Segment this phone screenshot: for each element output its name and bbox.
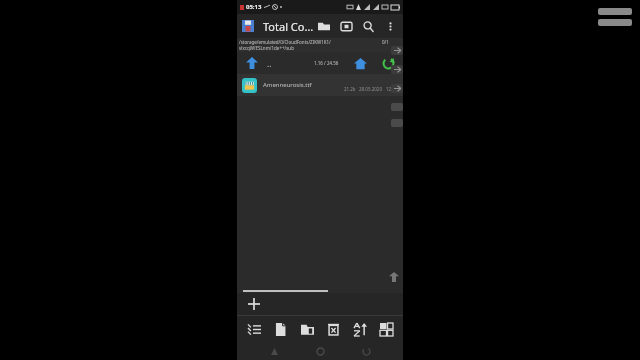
- button[interactable]: Home: [351, 54, 369, 72]
- staticText: 05:13: [246, 3, 262, 11]
- button[interactable]: App icon: [241, 19, 255, 33]
- button[interactable]: Sort: [349, 318, 371, 340]
- button[interactable]: More options: [381, 17, 399, 35]
- button[interactable]: Up one level: [243, 54, 261, 72]
- staticText: vlxcqW/ESLnm/1de++/sub: [239, 45, 294, 51]
- staticText: Amenneurosis.ttf: [263, 81, 312, 89]
- staticText: Total Com...: [263, 19, 315, 34]
- button[interactable]: Select: [243, 318, 265, 340]
- button[interactable]: Tab 2: [391, 119, 403, 127]
- button[interactable]: Recents: [357, 342, 375, 360]
- staticText: 0/1: [382, 39, 389, 45]
- button[interactable]: /storage/emulated/0/CloudFonts/ZIKW1K1/: [237, 38, 403, 52]
- button[interactable]: Home: [311, 342, 329, 360]
- staticText: 21.2k: [344, 86, 356, 92]
- button[interactable]: Back: [265, 342, 283, 360]
- button[interactable]: Tab 1: [391, 103, 403, 111]
- staticText: ..: [267, 58, 272, 69]
- staticText: 12:34: [386, 86, 398, 92]
- button[interactable]: New folder: [296, 318, 318, 340]
- button[interactable]: Panel button 3: [391, 84, 403, 93]
- button[interactable]: Search: [359, 17, 377, 35]
- staticText: 28.05.2020: [359, 86, 383, 92]
- button[interactable]: Refresh: [379, 54, 397, 72]
- button[interactable]: Delete: [322, 318, 344, 340]
- button[interactable]: Panel button 1: [391, 46, 403, 55]
- button[interactable]: Scroll to top: [387, 270, 401, 284]
- staticText: 1.16 / 24.56: [314, 60, 339, 66]
- button[interactable]: New file: [269, 318, 291, 340]
- button[interactable]: Folder: [315, 17, 333, 35]
- button[interactable]: Multi select: [375, 318, 397, 340]
- button[interactable]: Panel button 2: [391, 65, 403, 74]
- button[interactable]: Apps: [337, 17, 355, 35]
- staticText: /storage/emulated/0/CloudFonts/ZIKW1K1/: [239, 39, 331, 45]
- button[interactable]: Amenneurosis.ttf: [237, 74, 403, 96]
- button[interactable]: Total Com...: [263, 19, 315, 34]
- button[interactable]: Add: [245, 295, 263, 313]
